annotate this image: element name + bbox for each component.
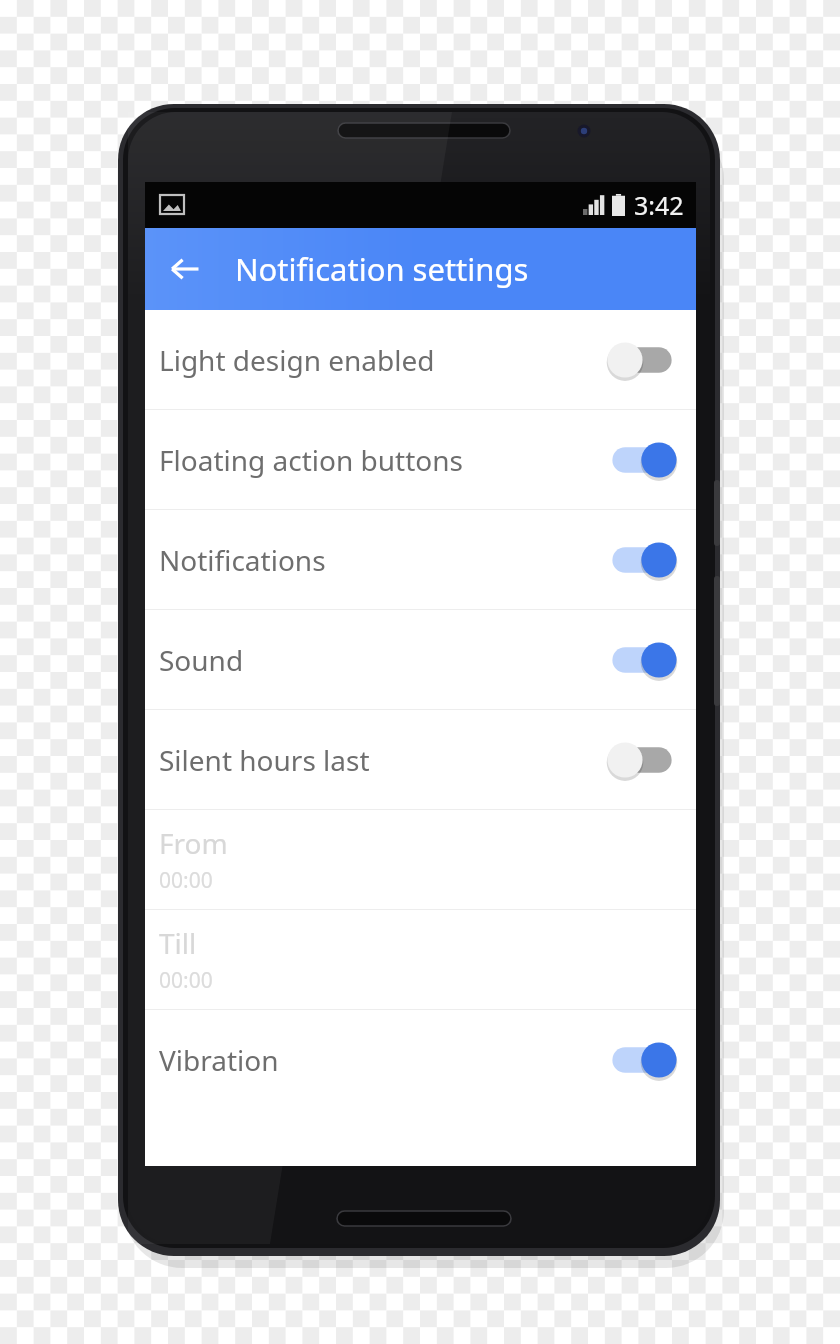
button[interactable] <box>604 738 680 782</box>
staticText: From <box>159 824 228 862</box>
staticText: 00:00 <box>159 966 213 995</box>
button[interactable] <box>604 538 680 582</box>
button[interactable]: Back <box>159 243 211 295</box>
button[interactable] <box>604 338 680 382</box>
button[interactable]: Till <box>145 910 696 1009</box>
button[interactable]: Silent hours last <box>145 710 696 809</box>
button[interactable]: Notifications <box>145 510 696 609</box>
button[interactable]: Floating action buttons <box>145 410 696 509</box>
staticText: Silent hours last <box>159 741 604 779</box>
button[interactable]: Sound <box>145 610 696 709</box>
button[interactable]: Vibration <box>145 1010 696 1109</box>
button[interactable] <box>604 1038 680 1082</box>
button[interactable]: Light design enabled <box>145 310 696 409</box>
staticText: Notifications <box>159 541 604 579</box>
staticText: 00:00 <box>159 866 213 895</box>
staticText: Notification settings <box>235 248 529 290</box>
button[interactable] <box>604 638 680 682</box>
staticText: Floating action buttons <box>159 441 604 479</box>
staticText: 3:42 <box>634 188 684 222</box>
staticText: Sound <box>159 641 604 679</box>
button[interactable] <box>604 438 680 482</box>
button[interactable]: From <box>145 810 696 909</box>
staticText: Vibration <box>159 1041 604 1079</box>
staticText: Till <box>159 924 197 962</box>
staticText: Light design enabled <box>159 341 604 379</box>
